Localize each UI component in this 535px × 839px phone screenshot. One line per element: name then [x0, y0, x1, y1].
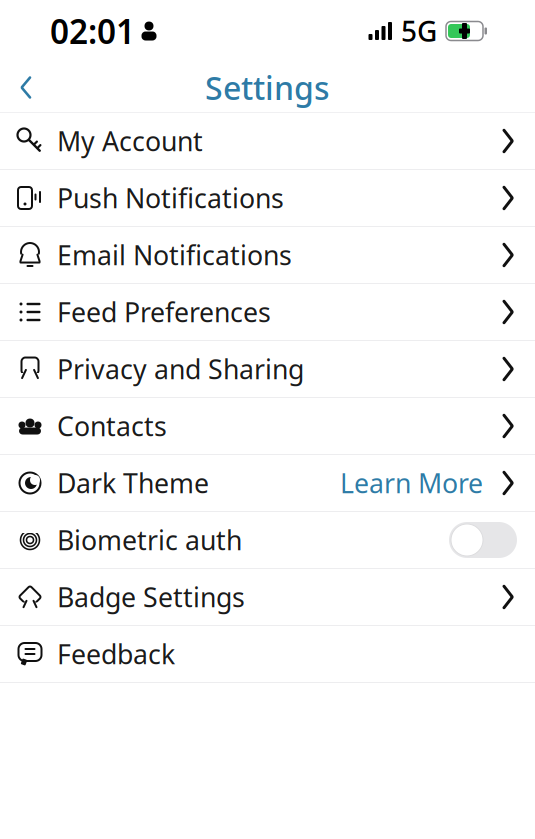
button[interactable]: Privacy and Sharing — [0, 341, 535, 397]
staticText: Push Notifications — [57, 180, 284, 216]
staticText: Contacts — [57, 408, 167, 444]
button[interactable]: My Account — [0, 113, 535, 169]
button[interactable]: Biometric auth — [0, 512, 535, 568]
staticText: Dark Theme — [57, 465, 209, 501]
button[interactable]: Push Notifications — [0, 170, 535, 226]
staticText: 5G — [401, 12, 437, 50]
staticText: Email Notifications — [57, 237, 292, 273]
staticText: Feed Preferences — [57, 294, 271, 330]
staticText: Settings — [205, 66, 330, 109]
staticText: 02:01 — [50, 9, 135, 53]
button[interactable]: Feedback — [0, 626, 535, 682]
staticText: Badge Settings — [57, 579, 245, 615]
staticText: Feedback — [57, 636, 175, 672]
staticText: Privacy and Sharing — [57, 351, 304, 387]
staticText: Learn More — [340, 465, 483, 501]
button[interactable]: Badge Settings — [0, 569, 535, 625]
staticText: Biometric auth — [57, 522, 242, 558]
button[interactable]: Email Notifications — [0, 227, 535, 283]
staticText: My Account — [57, 123, 203, 159]
button[interactable]: Contacts — [0, 398, 535, 454]
button[interactable]: Dark Theme — [0, 455, 535, 511]
button[interactable]: Back — [0, 62, 52, 113]
button[interactable]: Feed Preferences — [0, 284, 535, 340]
